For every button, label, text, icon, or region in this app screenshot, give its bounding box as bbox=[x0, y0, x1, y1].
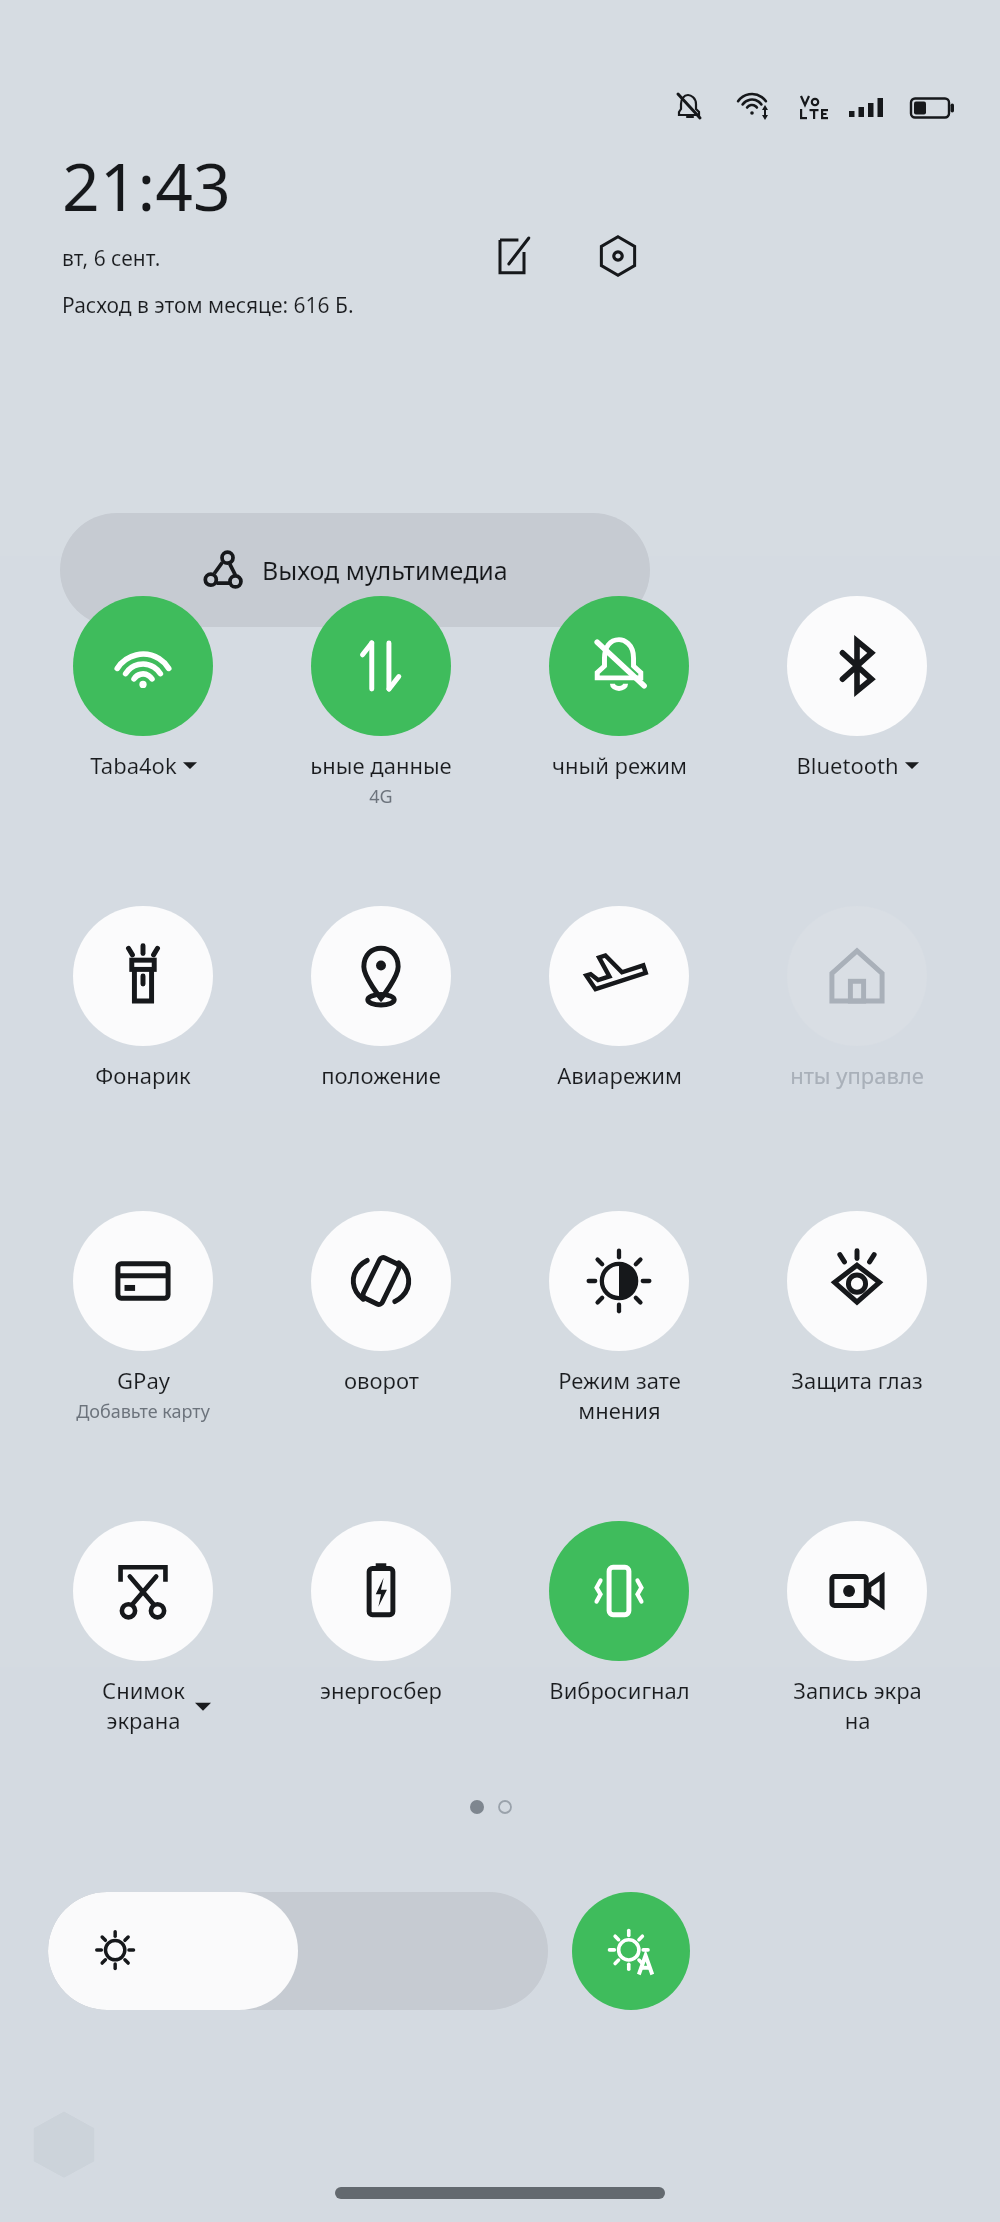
button[interactable]: ьные данные bbox=[273, 596, 489, 809]
button[interactable]: Фонарик bbox=[35, 906, 251, 1090]
staticText: Taba4ok bbox=[90, 750, 177, 780]
button[interactable]: Режим зате мнения bbox=[511, 1211, 727, 1425]
staticText: Снимок экрана bbox=[102, 1675, 185, 1735]
staticText: Защита глаз bbox=[791, 1365, 923, 1395]
button[interactable]: Выход мультимедиа bbox=[60, 513, 650, 627]
staticText: Запись экра на bbox=[793, 1675, 922, 1735]
staticText: 4G bbox=[369, 784, 393, 809]
button[interactable]: Bluetooth bbox=[749, 596, 965, 780]
staticText: Добавьте карту bbox=[76, 1399, 210, 1424]
button[interactable]: оворот bbox=[273, 1211, 489, 1395]
button[interactable]: Taba4ok bbox=[35, 596, 251, 780]
staticText: Выход мультимедиа bbox=[262, 553, 508, 587]
staticText: Bluetooth bbox=[796, 750, 899, 780]
staticText: Вибросигнал bbox=[549, 1675, 690, 1705]
staticText: оворот bbox=[344, 1365, 419, 1395]
button[interactable]: Защита глаз bbox=[749, 1211, 965, 1395]
staticText: Режим зате мнения bbox=[558, 1365, 681, 1425]
staticText: GPay bbox=[117, 1365, 170, 1395]
button[interactable]: Settings bbox=[590, 228, 646, 284]
staticText: чный режим bbox=[552, 750, 687, 780]
staticText: 21:43 bbox=[62, 140, 231, 230]
button[interactable] bbox=[48, 1892, 548, 2010]
staticText: вт, 6 сент. bbox=[62, 244, 161, 273]
button[interactable]: нты управле bbox=[749, 906, 965, 1090]
button[interactable]: Auto brightness bbox=[572, 1892, 690, 2010]
button[interactable]: положение bbox=[273, 906, 489, 1090]
button[interactable]: GPay bbox=[35, 1211, 251, 1424]
button[interactable]: Снимок экрана bbox=[35, 1521, 251, 1735]
staticText: Расход в этом месяце: 616 Б. bbox=[62, 291, 354, 320]
button[interactable]: Запись экра на bbox=[749, 1521, 965, 1735]
staticText: Фонарик bbox=[95, 1060, 191, 1090]
button[interactable]: Edit bbox=[484, 228, 540, 284]
staticText: нты управле bbox=[790, 1060, 924, 1090]
staticText: энергосбер bbox=[320, 1675, 442, 1705]
staticText: ьные данные bbox=[310, 750, 452, 780]
button[interactable]: чный режим bbox=[511, 596, 727, 780]
staticText: Авиарежим bbox=[557, 1060, 682, 1090]
button[interactable]: энергосбер bbox=[273, 1521, 489, 1705]
button[interactable]: Авиарежим bbox=[511, 906, 727, 1090]
button[interactable]: Вибросигнал bbox=[511, 1521, 727, 1705]
staticText: положение bbox=[321, 1060, 441, 1090]
